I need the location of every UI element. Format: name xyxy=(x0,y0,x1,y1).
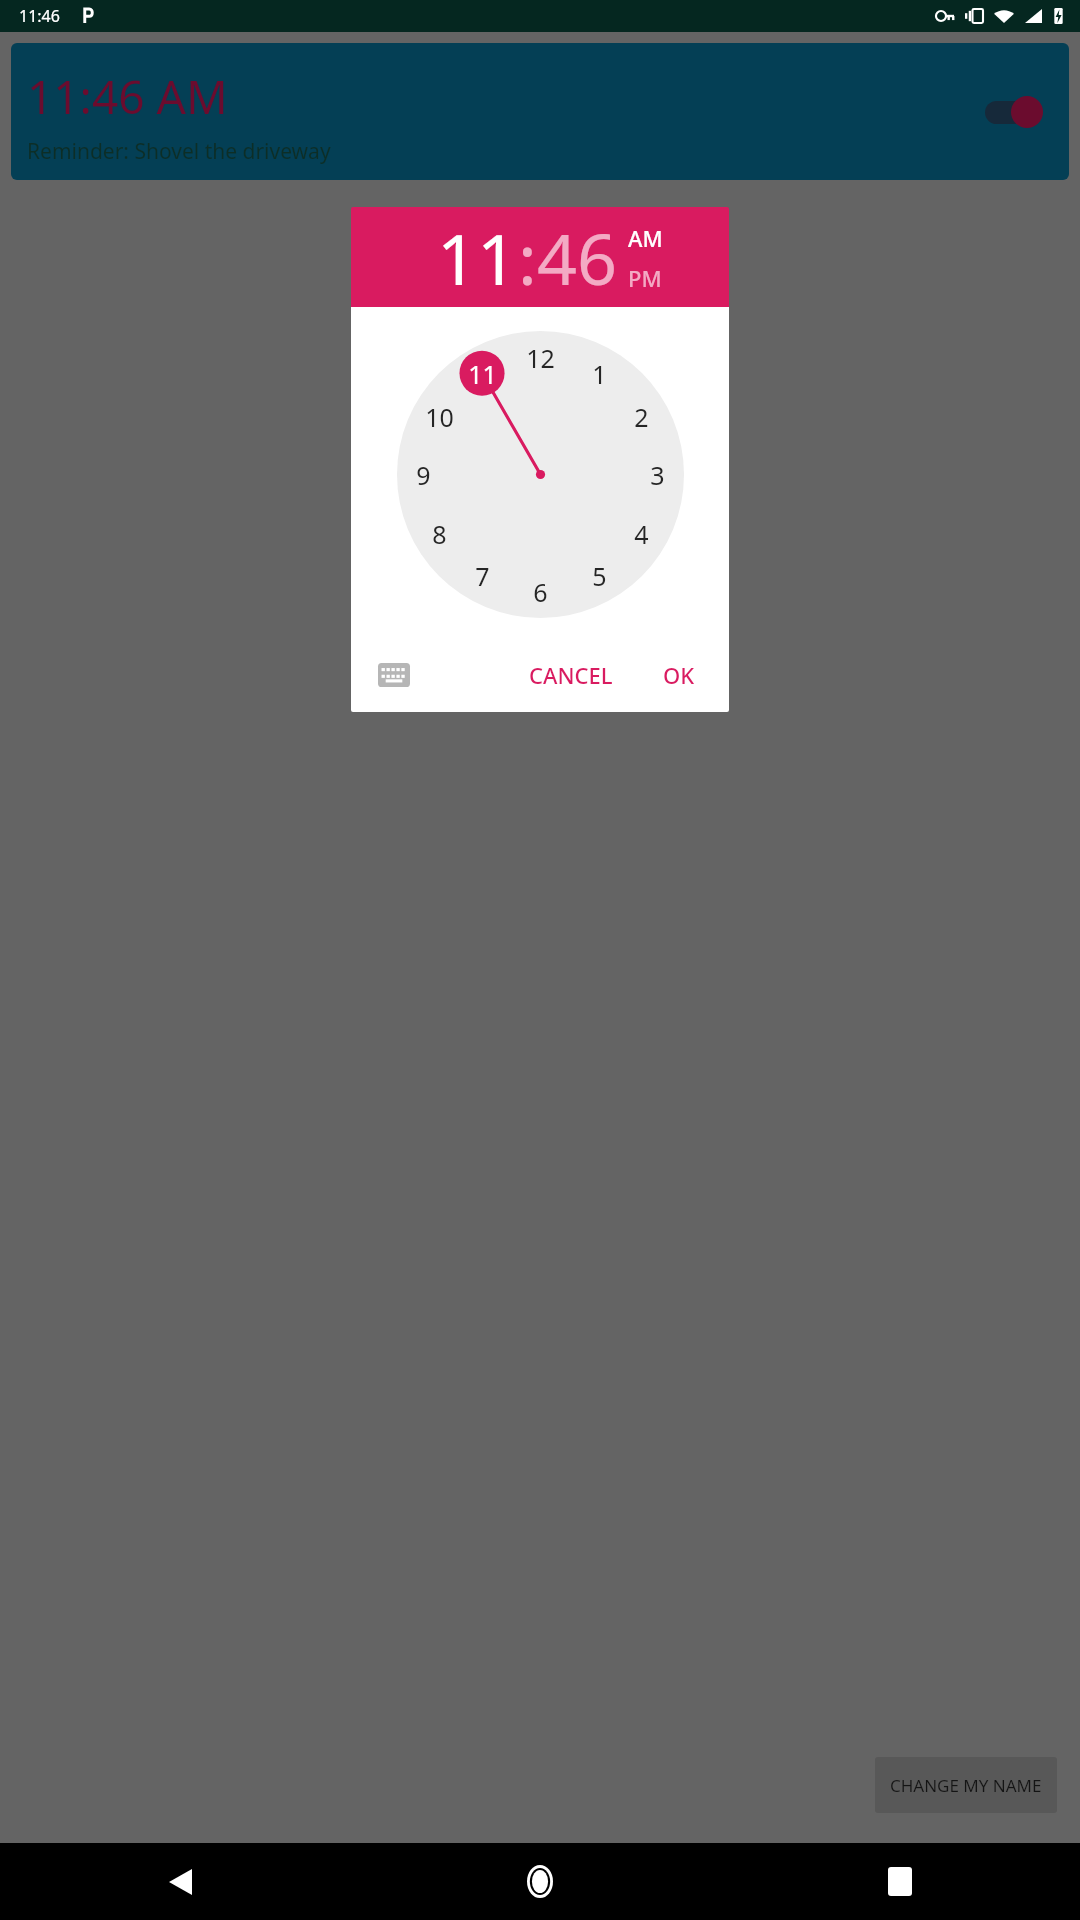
button[interactable]: Recent apps xyxy=(720,1843,1080,1920)
staticText: 11:46 AM xyxy=(27,65,228,128)
staticText: AM xyxy=(628,223,663,253)
button[interactable]: 46 xyxy=(537,210,618,305)
button[interactable]: CANCEL xyxy=(517,652,625,698)
button[interactable]: 6 xyxy=(533,575,548,609)
button[interactable]: 3 xyxy=(650,458,665,492)
button[interactable]: CHANGE MY NAME xyxy=(875,1757,1057,1813)
button[interactable]: OK xyxy=(651,652,707,698)
button[interactable]: 4 xyxy=(634,517,649,551)
button[interactable]: 8 xyxy=(432,517,447,551)
button[interactable]: 11:46 AM xyxy=(11,43,1069,180)
button[interactable]: 5 xyxy=(592,559,607,593)
button[interactable]: 7 xyxy=(475,559,490,593)
button[interactable]: 12 xyxy=(526,341,555,375)
button[interactable]: Home xyxy=(360,1843,720,1920)
button[interactable]: PM xyxy=(628,263,662,293)
staticText: 46 xyxy=(537,210,618,305)
staticText: PM xyxy=(628,263,662,293)
button[interactable]: Toggle reminder xyxy=(981,96,1043,128)
staticText: OK xyxy=(663,660,695,690)
staticText: CHANGE MY NAME xyxy=(890,1774,1042,1797)
button[interactable]: Back xyxy=(0,1843,360,1920)
staticText: CANCEL xyxy=(529,660,613,690)
staticText: : xyxy=(518,210,537,305)
button[interactable]: Switch to keyboard input xyxy=(373,654,415,696)
button[interactable]: 11 xyxy=(468,357,497,391)
staticText: Reminder: Shovel the driveway xyxy=(27,137,331,166)
button[interactable]: 2 xyxy=(634,400,649,434)
staticText: 11 xyxy=(437,210,518,305)
button[interactable]: AM xyxy=(628,223,663,253)
button[interactable]: 11 xyxy=(437,210,518,305)
staticText: 11:46 xyxy=(19,5,60,27)
button[interactable]: 1 xyxy=(592,357,607,391)
button[interactable]: 10 xyxy=(425,400,454,434)
button[interactable]: 9 xyxy=(416,458,431,492)
